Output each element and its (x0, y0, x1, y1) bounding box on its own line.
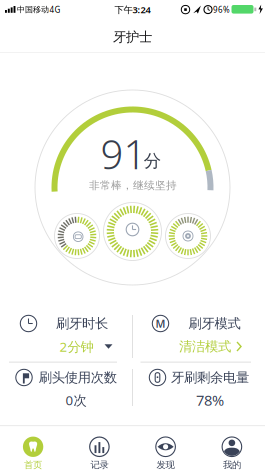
staticText: 刷牙模式 (188, 315, 240, 332)
staticText: 刷牙时长 (56, 315, 108, 332)
staticText: 清洁模式 (179, 338, 231, 355)
staticText: 记录 (90, 459, 108, 471)
staticText: 牙护士 (113, 29, 152, 45)
staticText: 分 (144, 150, 161, 172)
staticText: 96% (213, 4, 230, 15)
staticText: 首页 (24, 459, 42, 471)
staticText: 非常棒，继续坚持 (89, 179, 177, 192)
staticText: 2分钟 (59, 338, 93, 355)
button[interactable]: 首页 (2, 433, 64, 471)
staticText: 0次 (65, 391, 86, 409)
staticText: 4G (49, 4, 60, 15)
staticText: 刷头使用次数 (39, 369, 117, 386)
staticText: 91 (100, 127, 146, 180)
staticText: 我的 (223, 459, 241, 471)
button[interactable]: 2分钟 (59, 338, 112, 355)
button[interactable]: 我的 (201, 433, 263, 471)
button[interactable]: 清洁模式 (179, 338, 241, 355)
staticText: 下午3:24 (114, 3, 150, 16)
staticText: M (155, 316, 165, 331)
staticText: 78% (196, 390, 224, 410)
staticText: 中国移动 (17, 5, 49, 14)
button[interactable]: 发现 (135, 433, 197, 471)
button[interactable]: 记录 (68, 433, 130, 471)
staticText: 牙刷剩余电量 (171, 369, 249, 386)
staticText: 发现 (157, 459, 175, 471)
